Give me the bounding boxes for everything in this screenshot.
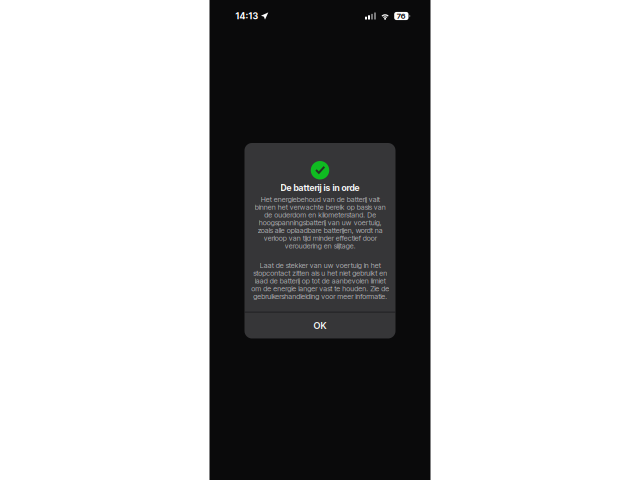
staticText: Het energiebehoud van de batterij valt b… <box>254 195 385 250</box>
staticText: 76 <box>397 11 406 21</box>
staticText: Laat de stekker van uw voertuig in het s… <box>251 261 389 301</box>
staticText: De batterij is in orde <box>280 182 359 193</box>
staticText: OK <box>313 320 326 331</box>
staticText: 14:13 <box>235 10 258 21</box>
button[interactable]: OK <box>244 312 395 338</box>
